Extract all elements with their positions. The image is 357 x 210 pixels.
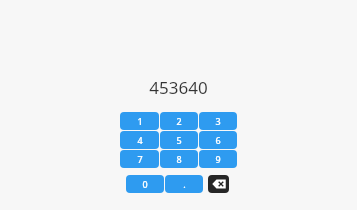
- button[interactable]: 2: [160, 112, 198, 130]
- staticText: 6: [215, 134, 221, 146]
- staticText: 4: [137, 134, 143, 146]
- staticText: 0: [142, 178, 148, 190]
- staticText: 5: [176, 134, 182, 146]
- button[interactable]: 1: [120, 112, 159, 130]
- staticText: 7: [137, 153, 143, 165]
- button[interactable]: 3: [199, 112, 237, 130]
- staticText: 3: [215, 115, 221, 127]
- button[interactable]: 5: [160, 131, 198, 149]
- button[interactable]: 7: [120, 150, 159, 168]
- staticText: 453640: [149, 76, 208, 98]
- button[interactable]: 8: [160, 150, 198, 168]
- button[interactable]: .: [165, 175, 203, 193]
- button[interactable]: 6: [199, 131, 237, 149]
- staticText: 2: [176, 115, 182, 127]
- staticText: 9: [215, 153, 221, 165]
- button[interactable]: 9: [199, 150, 237, 168]
- button[interactable]: 4: [120, 131, 159, 149]
- staticText: 8: [176, 153, 182, 165]
- button[interactable]: Backspace: [208, 175, 229, 193]
- staticText: 1: [137, 115, 143, 127]
- button[interactable]: 0: [126, 175, 164, 193]
- staticText: .: [183, 178, 186, 190]
